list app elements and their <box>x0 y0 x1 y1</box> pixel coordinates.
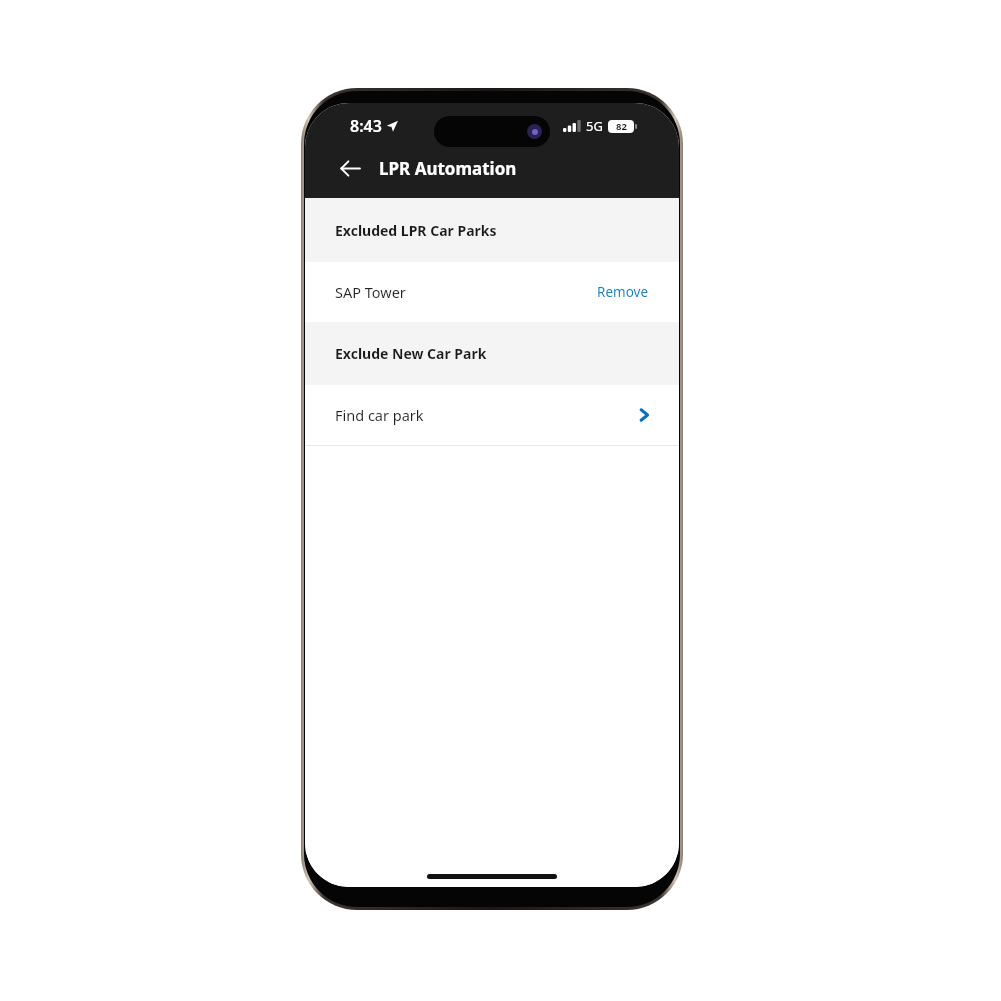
other: Open car park search <box>635 406 653 424</box>
staticText: 8:43 <box>350 115 382 137</box>
staticText: Exclude New Car Park <box>335 344 487 363</box>
staticText: 82 <box>616 120 627 133</box>
button[interactable]: Remove <box>597 283 649 301</box>
button[interactable]: SAP Tower <box>305 262 679 322</box>
staticText: Remove <box>597 283 649 301</box>
staticText: 5G <box>586 117 603 135</box>
staticText: LPR Automation <box>379 157 517 180</box>
button[interactable]: Find car park <box>305 385 679 445</box>
staticText: SAP Tower <box>335 282 406 302</box>
staticText: Find car park <box>335 405 424 425</box>
staticText: Excluded LPR Car Parks <box>335 221 497 240</box>
button[interactable]: Back <box>333 151 367 185</box>
